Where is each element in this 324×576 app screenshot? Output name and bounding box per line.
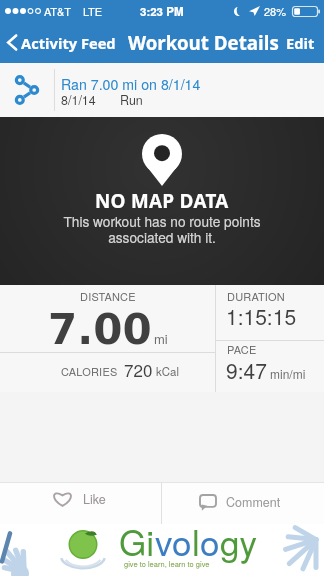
button[interactable]: Edit — [280, 22, 324, 63]
button[interactable]: Like — [0, 478, 159, 520]
staticText: Activity Feed — [21, 33, 116, 53]
staticText: LTE — [83, 3, 103, 19]
staticText: 28% — [264, 3, 287, 19]
staticText: DISTANCE — [80, 288, 136, 304]
staticText: Comment — [226, 493, 281, 511]
staticText: Run — [120, 91, 143, 109]
staticText: Ran 7.00 mi on 8/1/14 — [61, 74, 201, 94]
staticText: PACE — [227, 341, 257, 357]
staticText: 1:15:15 — [226, 301, 297, 331]
staticText: Gi — [119, 516, 155, 566]
staticText: l — [192, 516, 200, 566]
staticText: o — [200, 516, 220, 566]
staticText: Like — [83, 490, 106, 508]
staticText: NO MAP DATA — [95, 188, 229, 214]
staticText: 7.00 — [48, 305, 152, 353]
staticText: Edit — [286, 33, 315, 53]
staticText: kCal — [156, 363, 179, 379]
staticText: min/mi — [270, 365, 306, 382]
staticText: This workout has no route points associa… — [63, 211, 261, 247]
staticText: 9:47 — [226, 355, 267, 385]
staticText: CALORIES — [61, 363, 118, 379]
staticText: AT&T — [44, 3, 72, 19]
staticText: DURATION — [227, 288, 285, 304]
staticText: 720 — [124, 357, 153, 381]
staticText: 8/1/14 — [61, 91, 96, 109]
button[interactable]: Ran 7.00 mi on 8/1/14 — [0, 63, 324, 117]
button[interactable]: Activity Feed — [0, 22, 120, 63]
staticText: vo — [155, 516, 192, 566]
staticText: Workout Details — [128, 30, 279, 55]
staticText: 3:23 PM — [140, 3, 184, 19]
staticText: mi — [154, 329, 168, 348]
staticText: give to learn, learn to give — [124, 558, 210, 569]
button[interactable]: Comment — [159, 481, 321, 523]
staticText: gy — [220, 516, 257, 566]
button[interactable]: Givology advertisement — [0, 524, 324, 576]
